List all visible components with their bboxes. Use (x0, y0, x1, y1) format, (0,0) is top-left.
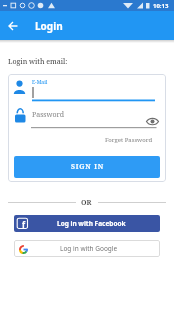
button[interactable]: Forget Password (105, 136, 160, 148)
staticText: Login with email: (8, 57, 68, 67)
staticText: f (22, 219, 26, 230)
staticText: SIGN IN (71, 162, 104, 172)
button[interactable] (4, 20, 22, 32)
staticText: Password (32, 110, 65, 120)
staticText: Log in with Google (60, 244, 118, 253)
button[interactable]: E-Mail (8, 76, 166, 106)
staticText: E-Mail (32, 79, 48, 86)
button[interactable]: SIGN IN (14, 156, 160, 178)
staticText: Login (35, 19, 63, 33)
button[interactable]: f (14, 215, 160, 232)
button[interactable] (144, 114, 160, 128)
button[interactable]: Log in with Google (14, 240, 160, 257)
staticText: Forget Password (105, 136, 153, 144)
staticText: Log in with Facebook (57, 219, 126, 228)
staticText: 10:13 (153, 2, 169, 10)
staticText: OR (81, 198, 92, 208)
button[interactable]: Password (8, 106, 166, 130)
